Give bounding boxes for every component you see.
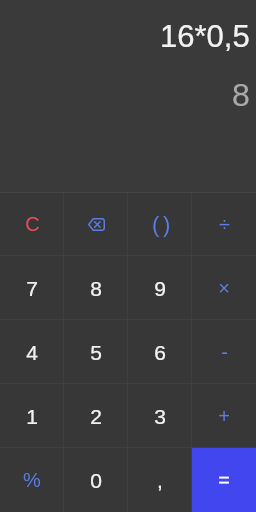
button[interactable]: Backspace xyxy=(64,192,128,256)
button[interactable]: × xyxy=(192,256,256,320)
staticText: = xyxy=(218,469,230,491)
staticText: 9 xyxy=(154,277,166,300)
button[interactable]: , xyxy=(128,448,192,512)
button[interactable]: 3 xyxy=(128,384,192,448)
staticText: 16*0,5 xyxy=(160,19,250,54)
staticText: × xyxy=(218,277,230,299)
button[interactable]: 2 xyxy=(64,384,128,448)
staticText: 0 xyxy=(90,469,102,492)
button[interactable]: 9 xyxy=(128,256,192,320)
button[interactable]: ÷ xyxy=(192,192,256,256)
staticText: % xyxy=(23,469,41,491)
staticText: 3 xyxy=(154,405,166,428)
button[interactable]: 8 xyxy=(64,256,128,320)
button[interactable]: - xyxy=(192,320,256,384)
staticText: 4 xyxy=(26,341,38,364)
staticText: 8 xyxy=(232,77,250,113)
button[interactable]: = xyxy=(192,448,256,512)
staticText: , xyxy=(157,469,163,492)
button[interactable]: ( ) xyxy=(128,192,192,256)
staticText: 6 xyxy=(154,341,166,364)
button[interactable]: 0 xyxy=(64,448,128,512)
staticText: + xyxy=(218,405,230,427)
staticText: 8 xyxy=(90,277,102,300)
button[interactable]: C xyxy=(0,192,64,256)
staticText: 1 xyxy=(26,405,38,428)
staticText: ÷ xyxy=(219,213,230,235)
button[interactable]: 5 xyxy=(64,320,128,384)
staticText: - xyxy=(221,341,228,363)
button[interactable]: 4 xyxy=(0,320,64,384)
button[interactable]: + xyxy=(192,384,256,448)
staticText: 7 xyxy=(26,277,38,300)
staticText: 5 xyxy=(90,341,102,364)
staticText: 2 xyxy=(90,405,102,428)
staticText: ( ) xyxy=(152,212,169,237)
staticText: C xyxy=(25,213,40,235)
button[interactable]: 7 xyxy=(0,256,64,320)
button[interactable]: 1 xyxy=(0,384,64,448)
button[interactable]: 6 xyxy=(128,320,192,384)
button[interactable]: % xyxy=(0,448,64,512)
